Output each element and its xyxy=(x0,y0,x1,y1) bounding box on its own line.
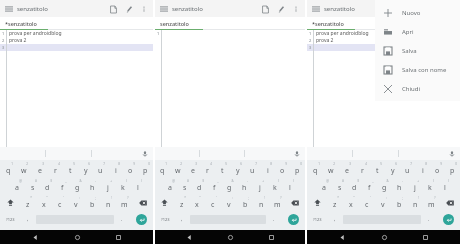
button[interactable]: 8 xyxy=(415,160,430,177)
button[interactable]: Backspace xyxy=(439,194,460,211)
button[interactable]: , xyxy=(21,211,35,228)
button[interactable]: Menu xyxy=(155,0,172,17)
button[interactable]: + xyxy=(252,177,267,194)
button[interactable]: New file xyxy=(412,1,428,17)
button[interactable]: & xyxy=(70,177,85,194)
button[interactable]: New file xyxy=(257,1,273,17)
button[interactable]: Back xyxy=(28,230,42,244)
button[interactable]: 5 xyxy=(370,160,385,177)
button[interactable]: 5 xyxy=(215,160,230,177)
button[interactable]: 6 xyxy=(385,160,400,177)
button[interactable]: Recents xyxy=(418,230,432,244)
button[interactable]: Apri xyxy=(375,22,460,41)
button[interactable]: Chiudi xyxy=(375,79,460,98)
button[interactable]: 1 xyxy=(0,160,16,177)
button[interactable]: , xyxy=(328,211,342,228)
button[interactable]: 2 xyxy=(170,160,185,177)
button[interactable]: More options xyxy=(289,2,303,16)
button[interactable]: 0 xyxy=(138,160,153,177)
button[interactable]: ( xyxy=(115,177,130,194)
button[interactable]: Recents xyxy=(264,230,278,244)
button[interactable]: : xyxy=(375,194,391,211)
button[interactable]: $ xyxy=(192,177,207,194)
button[interactable]: @ xyxy=(316,177,332,194)
button[interactable]: " xyxy=(189,194,205,211)
button[interactable]: ) xyxy=(437,177,452,194)
button[interactable]: & xyxy=(222,177,237,194)
button[interactable]: Shift xyxy=(0,194,20,211)
button[interactable]: Edit xyxy=(273,1,289,17)
button[interactable]: - xyxy=(392,177,407,194)
button[interactable]: Back xyxy=(182,230,196,244)
button[interactable]: # xyxy=(25,177,40,194)
button[interactable]: 4 xyxy=(200,160,215,177)
button[interactable]: Menu xyxy=(0,0,17,17)
button[interactable]: Enter xyxy=(281,211,305,228)
button[interactable]: ! xyxy=(100,194,116,211)
button[interactable]: 5 xyxy=(63,160,78,177)
button[interactable]: 9 xyxy=(430,160,445,177)
button[interactable]: 0 xyxy=(445,160,460,177)
button[interactable]: * xyxy=(174,194,189,211)
button[interactable]: senzatitolo xyxy=(155,17,209,29)
button[interactable]: Home xyxy=(223,230,237,244)
button[interactable]: 2 xyxy=(323,160,339,177)
button[interactable]: _ xyxy=(207,177,222,194)
button[interactable]: ' xyxy=(359,194,375,211)
button[interactable]: 3 xyxy=(339,160,355,177)
button[interactable]: Salva con nome xyxy=(375,60,460,79)
button[interactable]: ! xyxy=(253,194,269,211)
button[interactable]: More options xyxy=(137,2,151,16)
button[interactable]: @ xyxy=(162,177,177,194)
button[interactable]: ' xyxy=(205,194,221,211)
button[interactable]: # xyxy=(177,177,192,194)
button[interactable]: ) xyxy=(130,177,145,194)
button[interactable]: 3 xyxy=(185,160,200,177)
button[interactable]: Voice input xyxy=(444,147,460,160)
button[interactable]: 3 xyxy=(32,160,48,177)
button[interactable]: *senzatitolo xyxy=(307,17,361,29)
button[interactable]: _ xyxy=(362,177,377,194)
button[interactable]: ( xyxy=(422,177,437,194)
button[interactable]: 6 xyxy=(78,160,93,177)
button[interactable]: Home xyxy=(377,230,391,244)
button[interactable]: Menu xyxy=(307,0,324,17)
button[interactable]: Edit xyxy=(121,1,137,17)
button[interactable]: ?123 xyxy=(307,211,328,228)
button[interactable]: 7 xyxy=(400,160,415,177)
button[interactable]: $ xyxy=(347,177,362,194)
button[interactable]: Enter xyxy=(436,211,460,228)
button[interactable]: ; xyxy=(391,194,407,211)
button[interactable]: # xyxy=(332,177,347,194)
button[interactable]: " xyxy=(343,194,359,211)
button[interactable]: Backspace xyxy=(132,194,153,211)
button[interactable]: _ xyxy=(55,177,70,194)
button[interactable]: ? xyxy=(269,194,285,211)
button[interactable]: - xyxy=(237,177,252,194)
button[interactable]: ; xyxy=(84,194,100,211)
button[interactable]: + xyxy=(407,177,422,194)
button[interactable]: Shift xyxy=(307,194,327,211)
button[interactable]: & xyxy=(377,177,392,194)
button[interactable]: ' xyxy=(52,194,68,211)
button[interactable]: ; xyxy=(237,194,253,211)
button[interactable]: : xyxy=(221,194,237,211)
button[interactable]: , xyxy=(175,211,189,228)
button[interactable]: Backspace xyxy=(285,194,305,211)
button[interactable]: 0 xyxy=(290,160,305,177)
button[interactable]: $ xyxy=(40,177,55,194)
